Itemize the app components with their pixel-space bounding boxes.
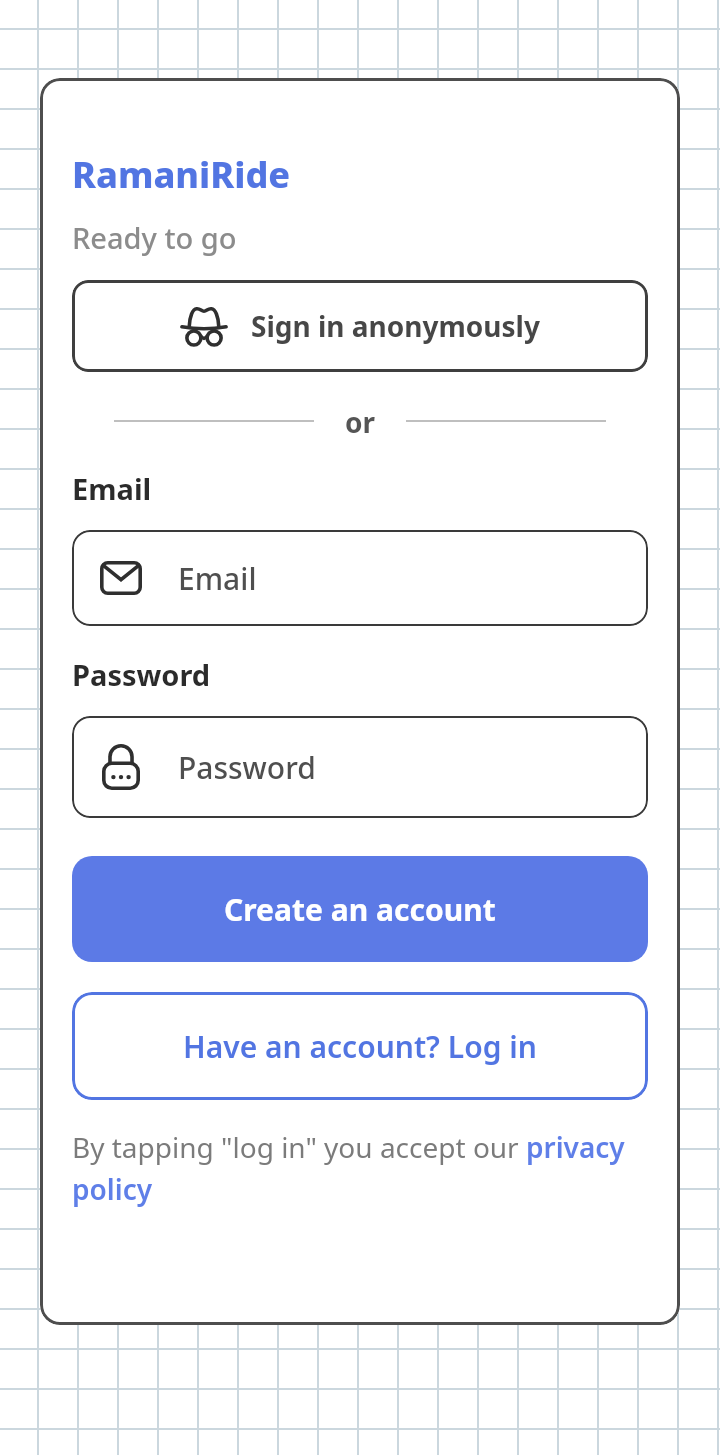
staticText: Password [178, 747, 316, 788]
button[interactable]: Email [72, 530, 648, 626]
button[interactable]: privacy [526, 1128, 625, 1166]
button[interactable]: policy [72, 1170, 153, 1208]
staticText: Email [72, 469, 152, 508]
staticText: Sign in anonymously [251, 307, 540, 345]
staticText: RamaniRide [72, 150, 291, 199]
staticText: or [345, 403, 376, 439]
staticText: By tapping "log in" you accept our [72, 1128, 526, 1166]
staticText: Ready to go [72, 218, 237, 257]
button[interactable]: Create an account [72, 856, 648, 962]
staticText: Have an account? Log in [183, 1026, 537, 1067]
button[interactable]: Have an account? Log in [72, 992, 648, 1100]
staticText: Create an account [224, 889, 496, 930]
staticText: Email [178, 558, 257, 599]
button[interactable]: Password [72, 716, 648, 818]
staticText: Password [72, 655, 211, 694]
button[interactable]: Sign in anonymously [72, 280, 648, 372]
